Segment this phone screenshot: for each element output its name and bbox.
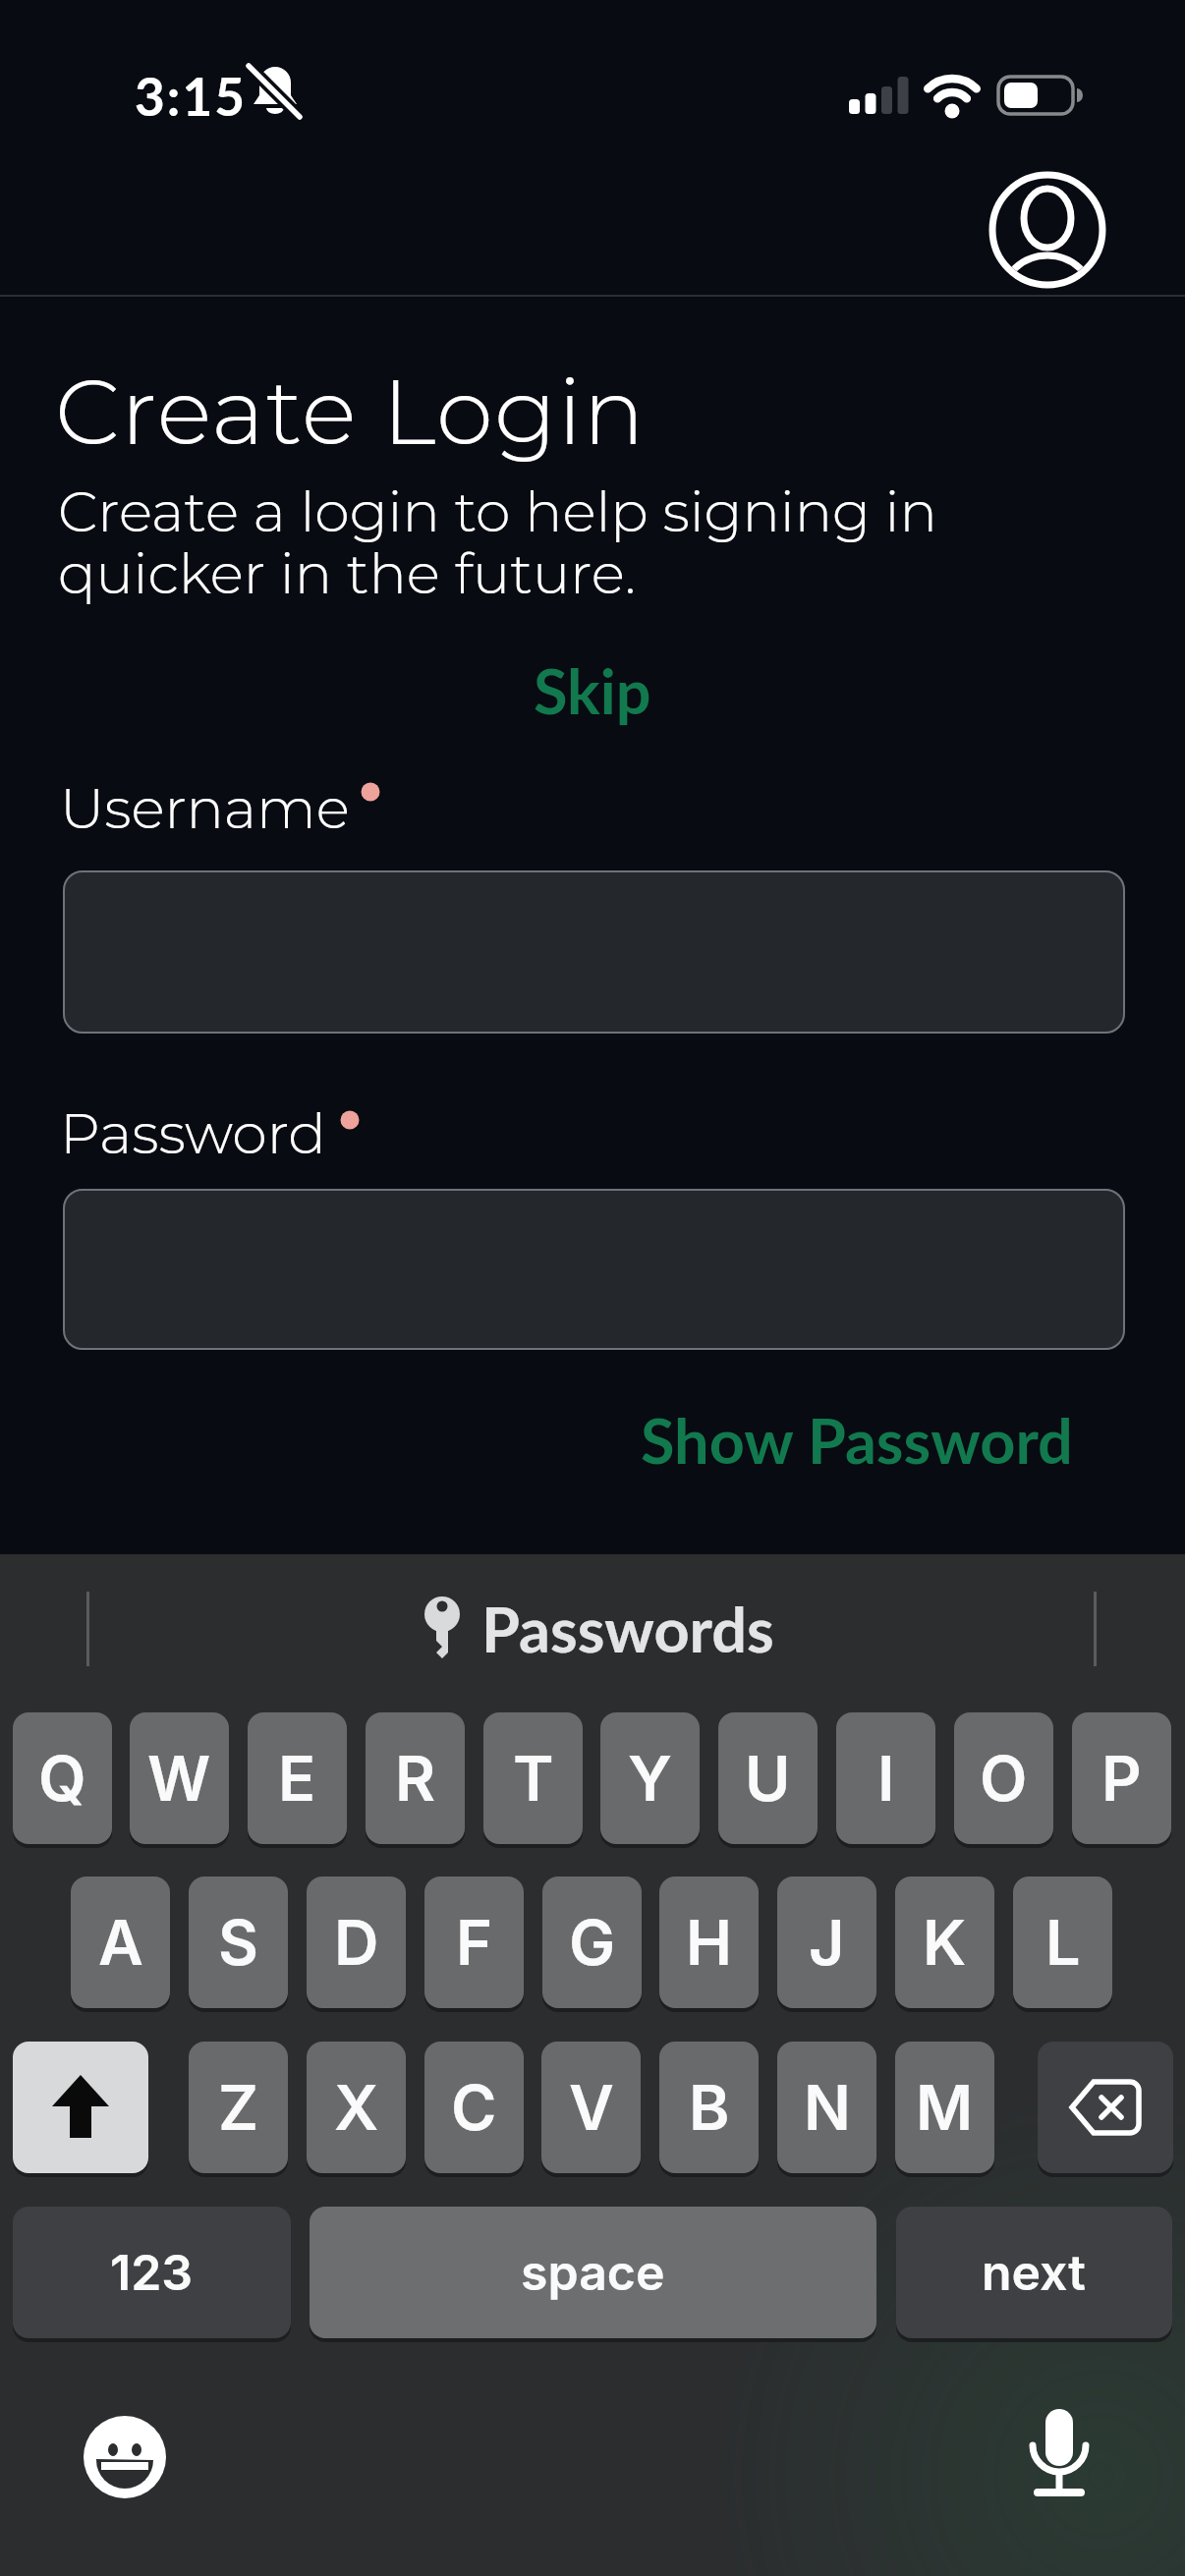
button[interactable] [1038, 2042, 1173, 2173]
button[interactable]: Y [600, 1712, 700, 1844]
staticText: N [804, 2070, 851, 2145]
button[interactable]: S [189, 1876, 288, 2008]
staticText: 3:15 [135, 65, 247, 128]
staticText: Passwords [481, 1592, 774, 1666]
button[interactable]: D [307, 1876, 406, 2008]
button[interactable] [76, 2408, 174, 2506]
staticText: K [923, 1905, 967, 1980]
button[interactable]: A [71, 1876, 170, 2008]
staticText: Username [60, 774, 350, 842]
staticText: H [686, 1905, 732, 1980]
staticText: Show Password [641, 1403, 1073, 1478]
staticText: D [334, 1905, 379, 1980]
staticText: T [513, 1741, 554, 1816]
button[interactable]: R [366, 1712, 465, 1844]
staticText: Create a login to help signing in quicke… [58, 477, 937, 607]
button[interactable]: 123 [13, 2207, 291, 2338]
staticText: Q [38, 1741, 86, 1816]
staticText: Z [218, 2070, 259, 2145]
staticText: G [569, 1905, 616, 1980]
staticText: R [395, 1741, 436, 1816]
button[interactable] [413, 1580, 776, 1678]
staticText: O [980, 1741, 1028, 1816]
button[interactable] [985, 167, 1110, 293]
staticText: A [98, 1905, 143, 1980]
staticText: F [456, 1905, 493, 1980]
button[interactable]: B [659, 2042, 759, 2173]
staticText: B [689, 2070, 730, 2145]
staticText: Skip [534, 653, 651, 728]
button[interactable]: M [895, 2042, 994, 2173]
button[interactable]: X [307, 2042, 406, 2173]
button[interactable]: I [836, 1712, 935, 1844]
button[interactable] [13, 2042, 148, 2173]
button[interactable]: W [130, 1712, 229, 1844]
button[interactable]: H [659, 1876, 759, 2008]
button[interactable]: G [542, 1876, 642, 2008]
button[interactable]: next [896, 2207, 1172, 2338]
staticText: J [809, 1905, 845, 1980]
button[interactable]: V [541, 2042, 641, 2173]
button[interactable]: N [777, 2042, 876, 2173]
button[interactable]: L [1013, 1876, 1112, 2008]
button[interactable] [63, 1189, 1125, 1350]
button[interactable]: E [248, 1712, 347, 1844]
staticText: M [916, 2070, 974, 2145]
staticText: 123 [110, 2243, 194, 2302]
button[interactable]: Skip [0, 653, 1185, 728]
staticText: L [1045, 1905, 1081, 1980]
staticText: Create Login [55, 356, 647, 467]
staticText: Password [60, 1099, 326, 1167]
staticText: U [745, 1741, 791, 1816]
button[interactable] [1010, 2397, 1108, 2505]
staticText: space [521, 2243, 665, 2302]
staticText: E [278, 1741, 316, 1816]
staticText: next [982, 2243, 1087, 2302]
staticText: Y [628, 1741, 672, 1816]
button[interactable]: Q [13, 1712, 112, 1844]
button[interactable]: Show Password [0, 1403, 1073, 1478]
staticText: V [569, 2070, 614, 2145]
button[interactable] [63, 870, 1125, 1034]
button[interactable]: space [310, 2207, 876, 2338]
button[interactable]: C [424, 2042, 524, 2173]
staticText: P [1101, 1741, 1142, 1816]
button[interactable]: K [895, 1876, 994, 2008]
button[interactable]: U [718, 1712, 818, 1844]
button[interactable]: O [954, 1712, 1053, 1844]
staticText: S [218, 1905, 258, 1980]
button[interactable]: T [483, 1712, 583, 1844]
button[interactable]: P [1072, 1712, 1171, 1844]
button[interactable]: F [424, 1876, 524, 2008]
button[interactable]: Z [189, 2042, 288, 2173]
staticText: C [451, 2070, 497, 2145]
staticText: W [147, 1741, 211, 1816]
button[interactable]: J [777, 1876, 876, 2008]
staticText: I [877, 1741, 895, 1816]
staticText: X [334, 2070, 379, 2145]
